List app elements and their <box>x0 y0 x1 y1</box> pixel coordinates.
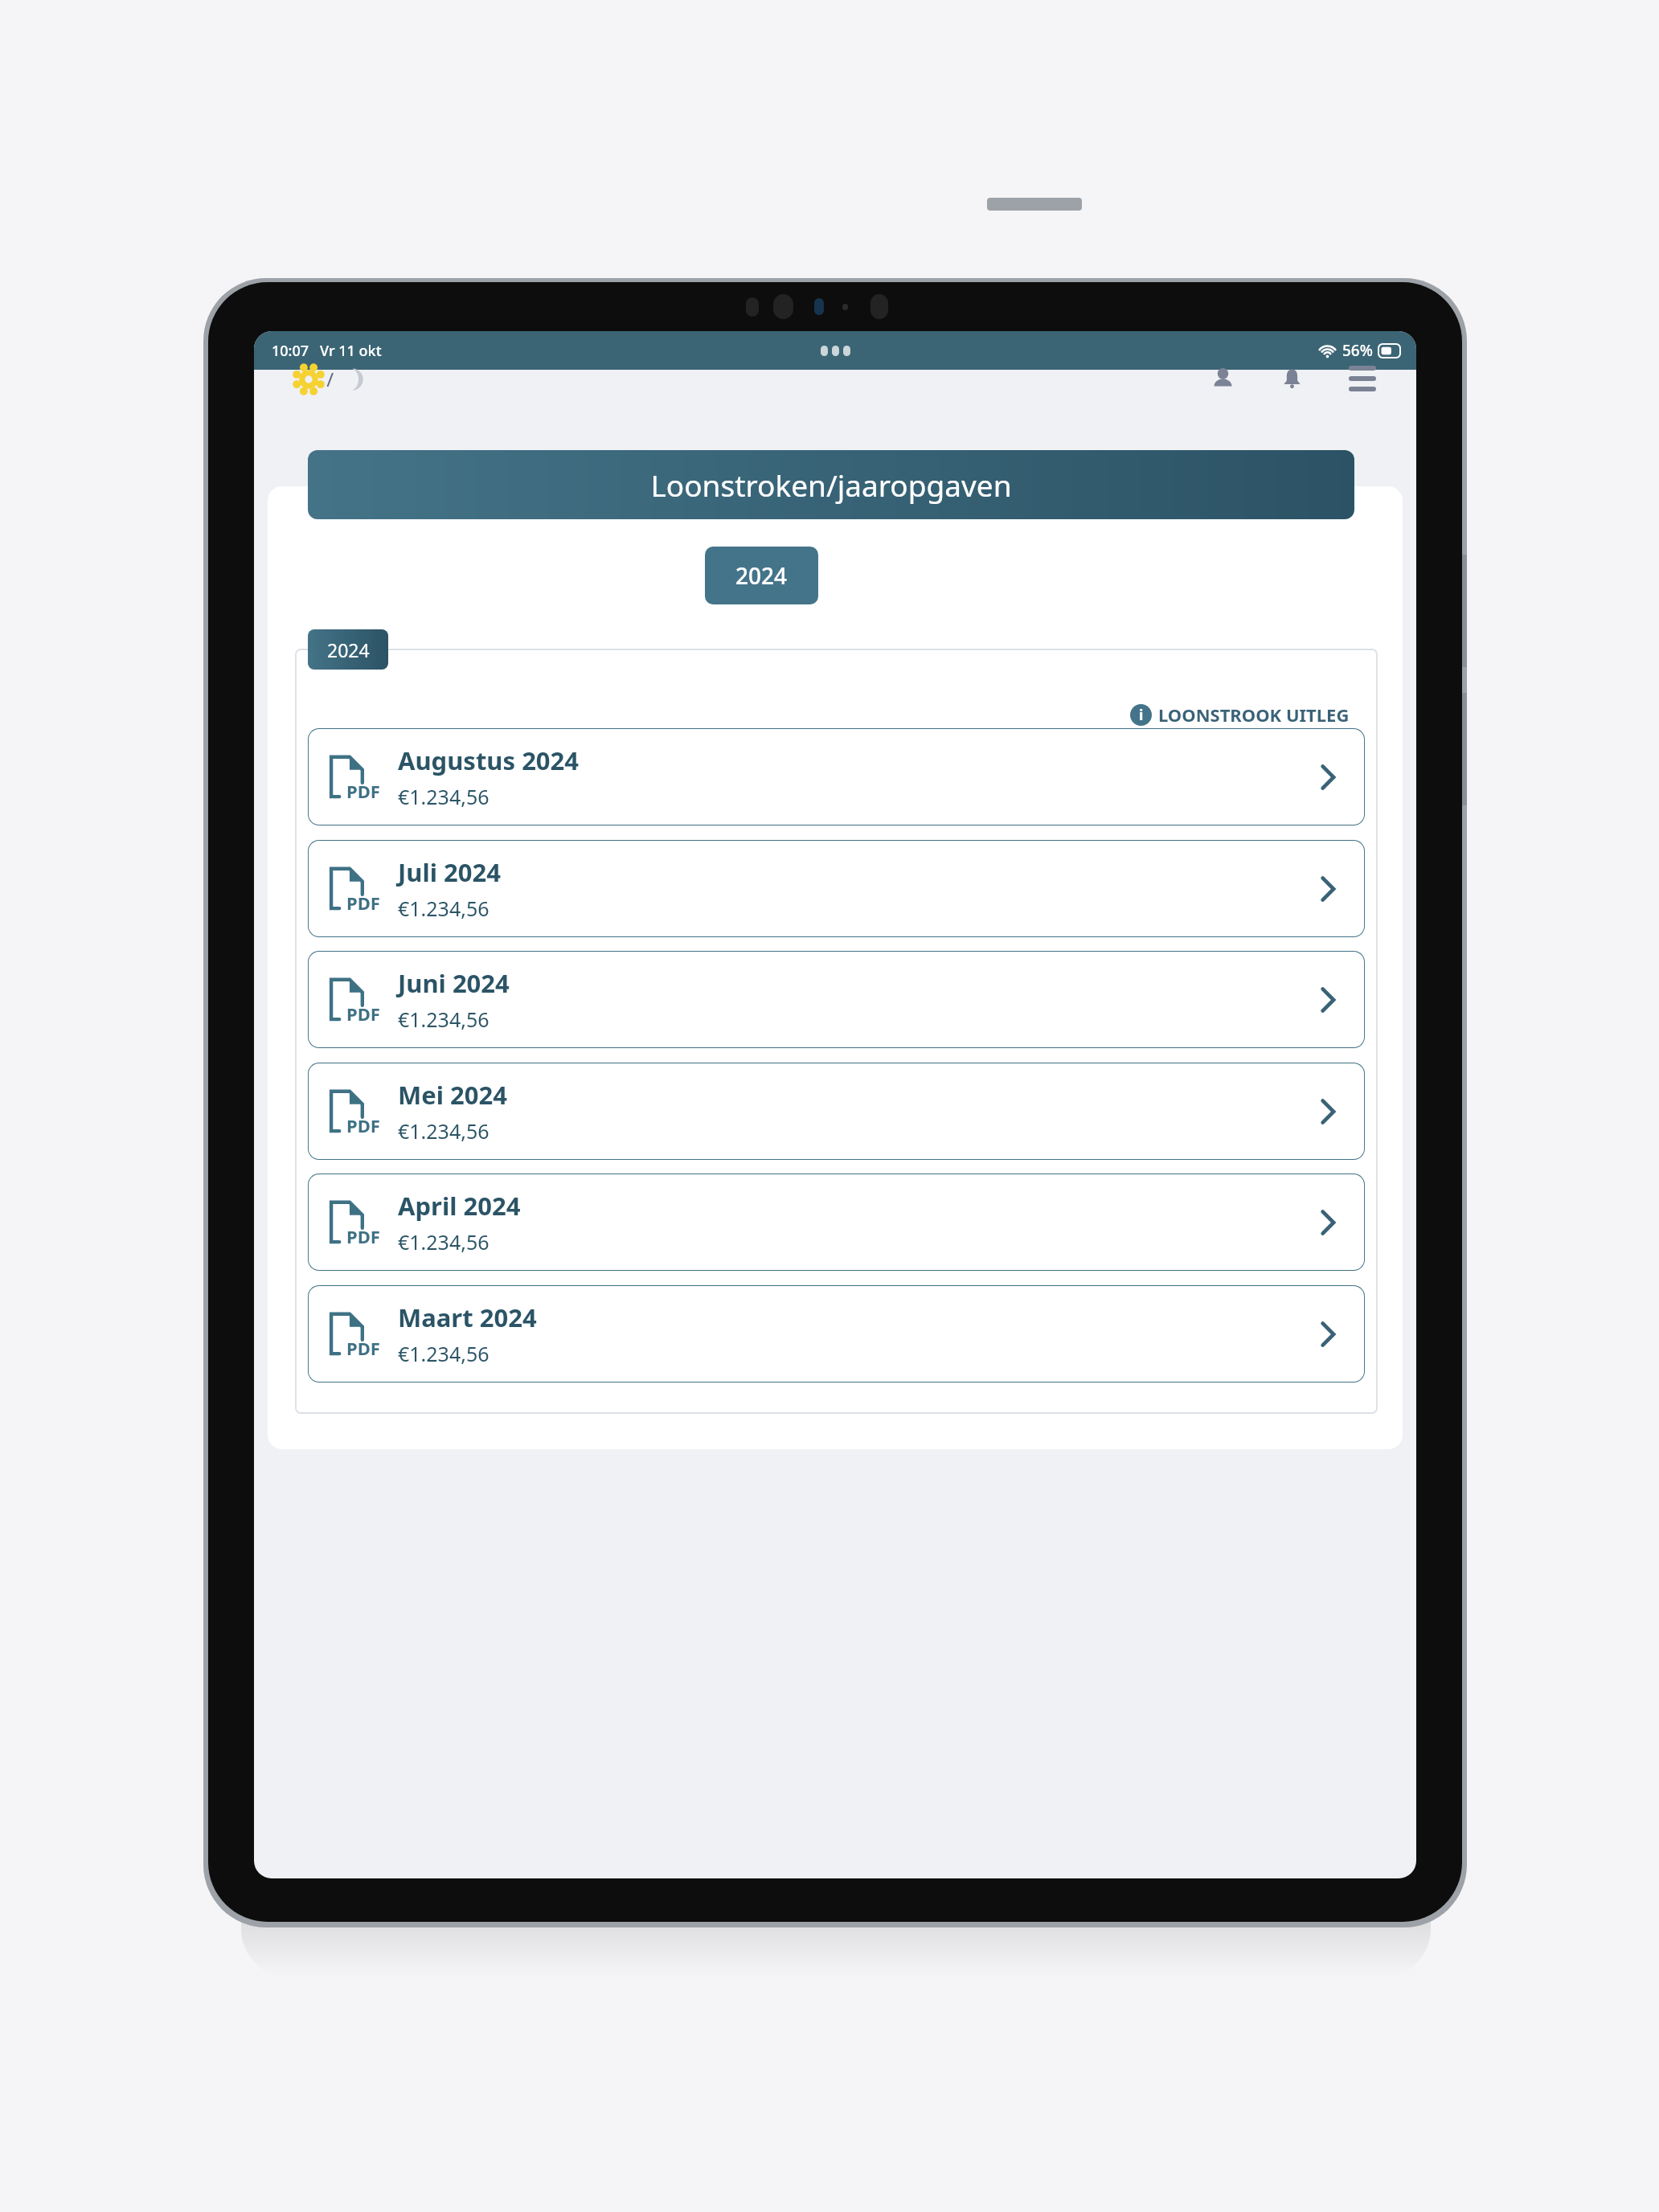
button[interactable]: PDF <box>308 1063 1365 1160</box>
staticText: Maart 2024 <box>398 1301 537 1334</box>
staticText: PDF <box>346 891 380 915</box>
staticText: PDF <box>346 1336 380 1360</box>
button[interactable]: PDF <box>308 1174 1365 1271</box>
staticText: 56% <box>1342 340 1373 361</box>
button[interactable]: PDF <box>308 951 1365 1048</box>
staticText: Loonstroken/jaaropgaven <box>650 465 1012 505</box>
staticText: Juli 2024 <box>398 855 501 889</box>
button[interactable]: PDF <box>308 1285 1365 1382</box>
staticText: €1.234,56 <box>398 1340 490 1367</box>
staticText: Mei 2024 <box>398 1078 507 1112</box>
staticText: LOONSTROOK UITLEG <box>1158 703 1350 727</box>
staticText: €1.234,56 <box>398 1117 490 1145</box>
button[interactable]: PDF <box>308 728 1365 825</box>
staticText: €1.234,56 <box>398 1228 490 1256</box>
staticText: 2024 <box>327 637 370 662</box>
button[interactable]: 2024 <box>308 629 388 670</box>
staticText: Augustus 2024 <box>398 743 580 777</box>
button[interactable]: i <box>1130 703 1350 727</box>
staticText: PDF <box>346 1113 380 1137</box>
staticText: 10:07 Vr 11 okt <box>272 341 382 361</box>
staticText: i <box>1139 705 1144 725</box>
staticText: 2024 <box>735 560 788 591</box>
other: Dark mode <box>339 367 363 391</box>
button[interactable]: Menu <box>1344 360 1381 397</box>
staticText: €1.234,56 <box>398 1006 490 1033</box>
staticText: PDF <box>346 779 380 803</box>
staticText: PDF <box>346 1002 380 1026</box>
button[interactable]: Light mode <box>296 366 363 392</box>
staticText: / <box>322 366 339 392</box>
button[interactable]: Profile <box>1206 362 1239 395</box>
staticText: €1.234,56 <box>398 895 490 922</box>
staticText: April 2024 <box>398 1189 521 1223</box>
other: Light mode <box>296 367 322 392</box>
staticText: PDF <box>346 1224 380 1248</box>
staticText: €1.234,56 <box>398 783 490 810</box>
button[interactable]: PDF <box>308 840 1365 937</box>
button[interactable]: Notifications <box>1275 362 1309 395</box>
button[interactable]: 2024 <box>705 547 818 604</box>
button[interactable]: Loonstroken/jaaropgaven <box>308 450 1354 519</box>
staticText: Juni 2024 <box>398 966 510 1000</box>
